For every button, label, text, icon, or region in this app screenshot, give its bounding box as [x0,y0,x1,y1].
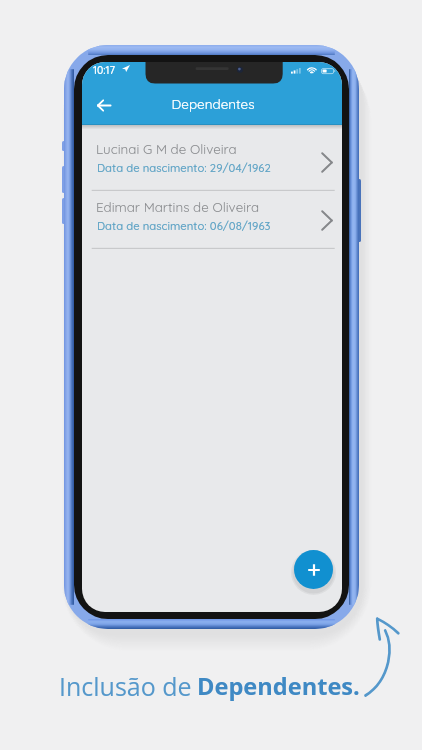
button[interactable]: Add dependent [294,550,333,589]
staticText: Data de nascimento: 29/04/1962 [97,161,271,175]
button[interactable]: Lucinai G M de Oliveira [82,133,342,191]
button[interactable]: Back [86,88,122,122]
staticText: Edimar Martins de Oliveira [96,199,260,216]
button[interactable]: Edimar Martins de Oliveira [82,191,342,249]
staticText: Dependentes [83,95,342,113]
staticText: 10:17 [93,63,115,76]
staticText: Lucinai G M de Oliveira [96,141,237,158]
staticText: Dependentes. [197,670,360,702]
staticText: Inclusão de [59,669,199,703]
staticText: Data de nascimento: 06/08/1963 [97,219,271,233]
